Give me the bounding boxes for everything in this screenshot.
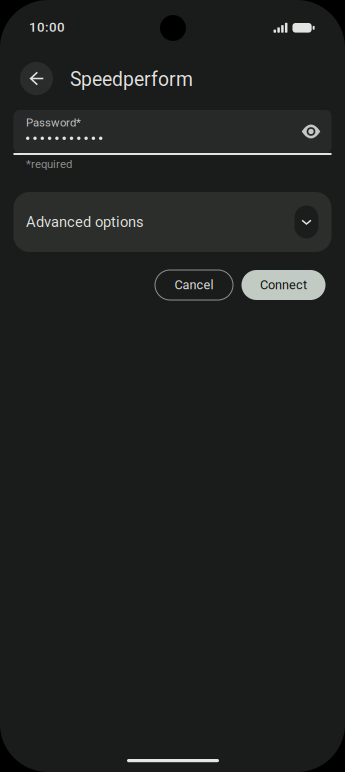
button[interactable]: Show password: [289, 110, 333, 153]
staticText: Connect: [260, 278, 307, 292]
staticText: 10:00: [29, 19, 65, 35]
staticText: *required: [26, 157, 72, 171]
staticText: Speedperform: [70, 68, 193, 91]
staticText: Advanced options: [26, 213, 144, 231]
staticText: Cancel: [174, 278, 213, 292]
button[interactable]: Back: [20, 62, 53, 95]
staticText: Password*: [26, 116, 81, 129]
button[interactable]: Connect: [241, 270, 325, 300]
button[interactable]: Cancel: [155, 270, 233, 300]
button[interactable]: Advanced options: [13, 192, 331, 252]
